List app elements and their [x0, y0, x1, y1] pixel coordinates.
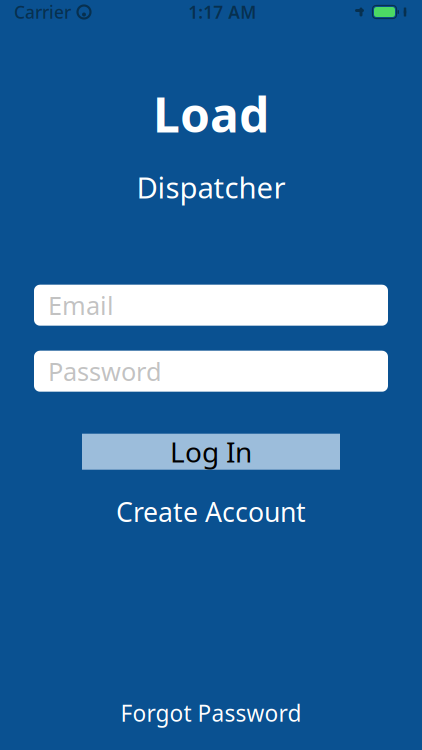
staticText: Create Account: [116, 494, 306, 529]
staticText: Carrier: [14, 0, 71, 23]
button[interactable]: Log In: [82, 434, 340, 470]
staticText: Forgot Password: [120, 698, 301, 728]
staticText: Password: [48, 354, 162, 388]
staticText: Log In: [170, 433, 252, 470]
staticText: Load: [153, 82, 269, 146]
staticText: 1:17 AM: [188, 0, 256, 23]
button[interactable]: Create Account: [82, 493, 340, 531]
staticText: Email: [48, 288, 114, 322]
button[interactable]: Forgot Password: [91, 696, 331, 730]
button[interactable]: Password: [34, 351, 388, 392]
staticText: Dispatcher: [136, 168, 285, 207]
button[interactable]: Email: [34, 285, 388, 326]
